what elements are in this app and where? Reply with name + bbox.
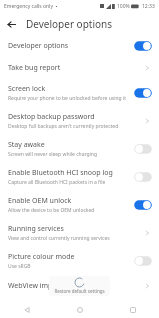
staticText: Take bug report	[8, 63, 61, 73]
staticText: Use sRGB	[8, 263, 31, 270]
staticText: Restore default settings	[54, 288, 105, 294]
button[interactable]: Enable Bluetooth HCI snoop log	[0, 163, 159, 191]
staticText: Desktop backup password	[8, 112, 95, 122]
button[interactable]: Off	[133, 255, 153, 267]
button[interactable]: Take bug report	[0, 57, 159, 79]
staticText: Allow the device to be OEM unlocked	[8, 207, 95, 214]
button[interactable]: Desktop backup password	[0, 107, 159, 135]
button[interactable]: Running services	[0, 219, 159, 247]
staticText: Screen lock	[8, 84, 46, 94]
staticText: Screen will never sleep while charging	[8, 151, 98, 158]
staticText: Require your phone to be unlocked before…	[8, 95, 127, 102]
button[interactable]: Off	[133, 171, 153, 183]
button[interactable]: On	[133, 87, 153, 99]
staticText: Running services	[8, 224, 64, 234]
button[interactable]: Enable OEM unlock	[0, 191, 159, 219]
button[interactable]: WebView implementation	[0, 275, 159, 297]
staticText: Enable OEM unlock	[8, 196, 72, 206]
staticText: 100%	[117, 3, 130, 10]
staticText: View and control currently running servi…	[8, 235, 110, 242]
button[interactable]: Developer options	[0, 35, 159, 57]
button[interactable]: Recents	[106, 302, 159, 318]
button[interactable]: Off	[133, 143, 153, 155]
staticText: Developer options	[8, 41, 69, 51]
button[interactable]: On	[133, 40, 153, 52]
staticText: WebView implementation	[8, 281, 93, 291]
button[interactable]: Back	[0, 13, 22, 35]
staticText: Emergency calls only	[4, 3, 53, 10]
button[interactable]: Home	[53, 302, 106, 318]
staticText: 12:33	[142, 3, 155, 10]
button[interactable]: Picture colour mode	[0, 247, 159, 275]
staticText: Capture all Bluetooth HCI packets in a f…	[8, 179, 106, 186]
button[interactable]: On	[133, 199, 153, 211]
staticText: Developer options	[26, 17, 113, 31]
staticText: Stay awake	[8, 140, 45, 150]
button[interactable]: Screen lock	[0, 79, 159, 107]
staticText: Enable Bluetooth HCI snoop log	[8, 168, 113, 178]
staticText: Picture colour mode	[8, 252, 75, 262]
staticText: Desktop full backups aren't currently pr…	[8, 123, 119, 130]
button[interactable]: Back	[0, 302, 53, 318]
button[interactable]: Stay awake	[0, 135, 159, 163]
